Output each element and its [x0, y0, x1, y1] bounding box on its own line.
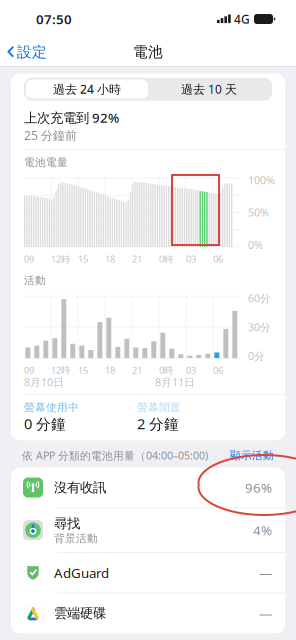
- staticText: 0時: [159, 253, 173, 265]
- button[interactable]: AdGuard: [11, 553, 285, 593]
- staticText: 顯示活動: [230, 449, 274, 462]
- staticText: 21: [132, 253, 142, 265]
- staticText: 12時: [51, 364, 70, 376]
- staticText: 100%: [248, 173, 275, 187]
- staticText: 雲端硬碟: [54, 605, 106, 622]
- staticText: 07:50: [36, 10, 72, 28]
- staticText: AdGuard: [54, 564, 109, 582]
- staticText: —: [259, 564, 272, 582]
- staticText: 上次充電到 92%: [24, 109, 119, 126]
- staticText: 過去 10 天: [181, 81, 237, 97]
- staticText: 8月10日: [24, 375, 64, 389]
- staticText: 03: [186, 364, 196, 376]
- staticText: 96%: [245, 479, 272, 496]
- button[interactable]: 雲端硬碟: [11, 593, 285, 633]
- staticText: 沒有收訊: [54, 479, 106, 496]
- staticText: 15: [78, 253, 88, 265]
- staticText: 8月11日: [155, 375, 195, 389]
- staticText: 電池電量: [24, 156, 68, 169]
- staticText: 25 分鐘前: [24, 127, 77, 143]
- staticText: 依 APP 分類的電池用量（04:00–05:00): [22, 448, 208, 463]
- staticText: 06: [213, 364, 223, 376]
- staticText: 過去 24 小時: [53, 81, 121, 97]
- staticText: 0時: [159, 364, 173, 376]
- staticText: 21: [132, 364, 142, 376]
- staticText: 尋找: [54, 515, 80, 532]
- staticText: —: [259, 604, 272, 622]
- staticText: 0%: [248, 238, 263, 252]
- staticText: 螢幕閒置: [137, 401, 181, 414]
- staticText: 背景活動: [54, 532, 98, 545]
- staticText: 09: [24, 253, 34, 265]
- button[interactable]: 尋找: [11, 508, 285, 553]
- staticText: 電池: [133, 43, 163, 61]
- staticText: 30分: [248, 320, 271, 334]
- staticText: 0分: [248, 349, 265, 363]
- staticText: 15: [78, 364, 88, 376]
- staticText: 06: [213, 253, 223, 265]
- staticText: 60分: [248, 291, 271, 305]
- staticText: 50%: [248, 205, 269, 220]
- button[interactable]: 過去 24 小時: [26, 80, 148, 99]
- staticText: 09: [24, 364, 34, 376]
- staticText: 2 分鐘: [137, 414, 179, 433]
- staticText: 4G: [234, 11, 250, 27]
- staticText: 12時: [51, 253, 70, 265]
- staticText: 18: [105, 364, 115, 376]
- button[interactable]: 設定: [0, 39, 47, 65]
- staticText: 設定: [17, 43, 47, 61]
- staticText: 螢幕使用中: [24, 401, 79, 414]
- staticText: 0 分鐘: [24, 414, 66, 433]
- button[interactable]: 沒有收訊: [11, 468, 285, 508]
- staticText: 活動: [24, 274, 46, 287]
- staticText: 4%: [253, 521, 272, 539]
- staticText: 18: [105, 253, 115, 265]
- staticText: 03: [186, 253, 196, 265]
- button[interactable]: 顯示活動: [230, 449, 274, 462]
- button[interactable]: 過去 10 天: [148, 80, 270, 99]
